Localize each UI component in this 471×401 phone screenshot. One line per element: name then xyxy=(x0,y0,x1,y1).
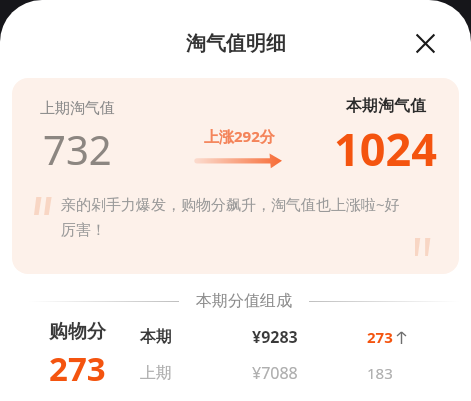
staticText: ¥7088 xyxy=(252,362,367,384)
staticText: 273 xyxy=(49,346,106,391)
staticText: 本期淘气值 xyxy=(346,96,426,116)
staticText: 1024 xyxy=(334,118,437,179)
staticText: 购物分 xyxy=(49,320,106,344)
staticText: 183 xyxy=(367,363,393,383)
staticText: 732 xyxy=(43,122,112,176)
button[interactable]: 上期淘气值 xyxy=(12,78,459,274)
staticText: 上涨292分 xyxy=(204,126,275,146)
staticText: 本期 xyxy=(140,327,252,347)
staticText: 上期淘气值 xyxy=(40,99,115,118)
staticText: 273 xyxy=(367,327,393,347)
staticText: 亲的剁手力爆发，购物分飙升，淘气值也上涨啦~好 厉害！ xyxy=(61,194,401,239)
staticText: 本期分值组成 xyxy=(196,291,292,311)
button[interactable]: Close xyxy=(407,25,443,61)
staticText: 上期 xyxy=(140,363,252,383)
staticText: 淘气值明细 xyxy=(186,31,286,56)
staticText: ¥9283 xyxy=(252,326,367,348)
button[interactable]: 购物分 xyxy=(0,320,471,401)
